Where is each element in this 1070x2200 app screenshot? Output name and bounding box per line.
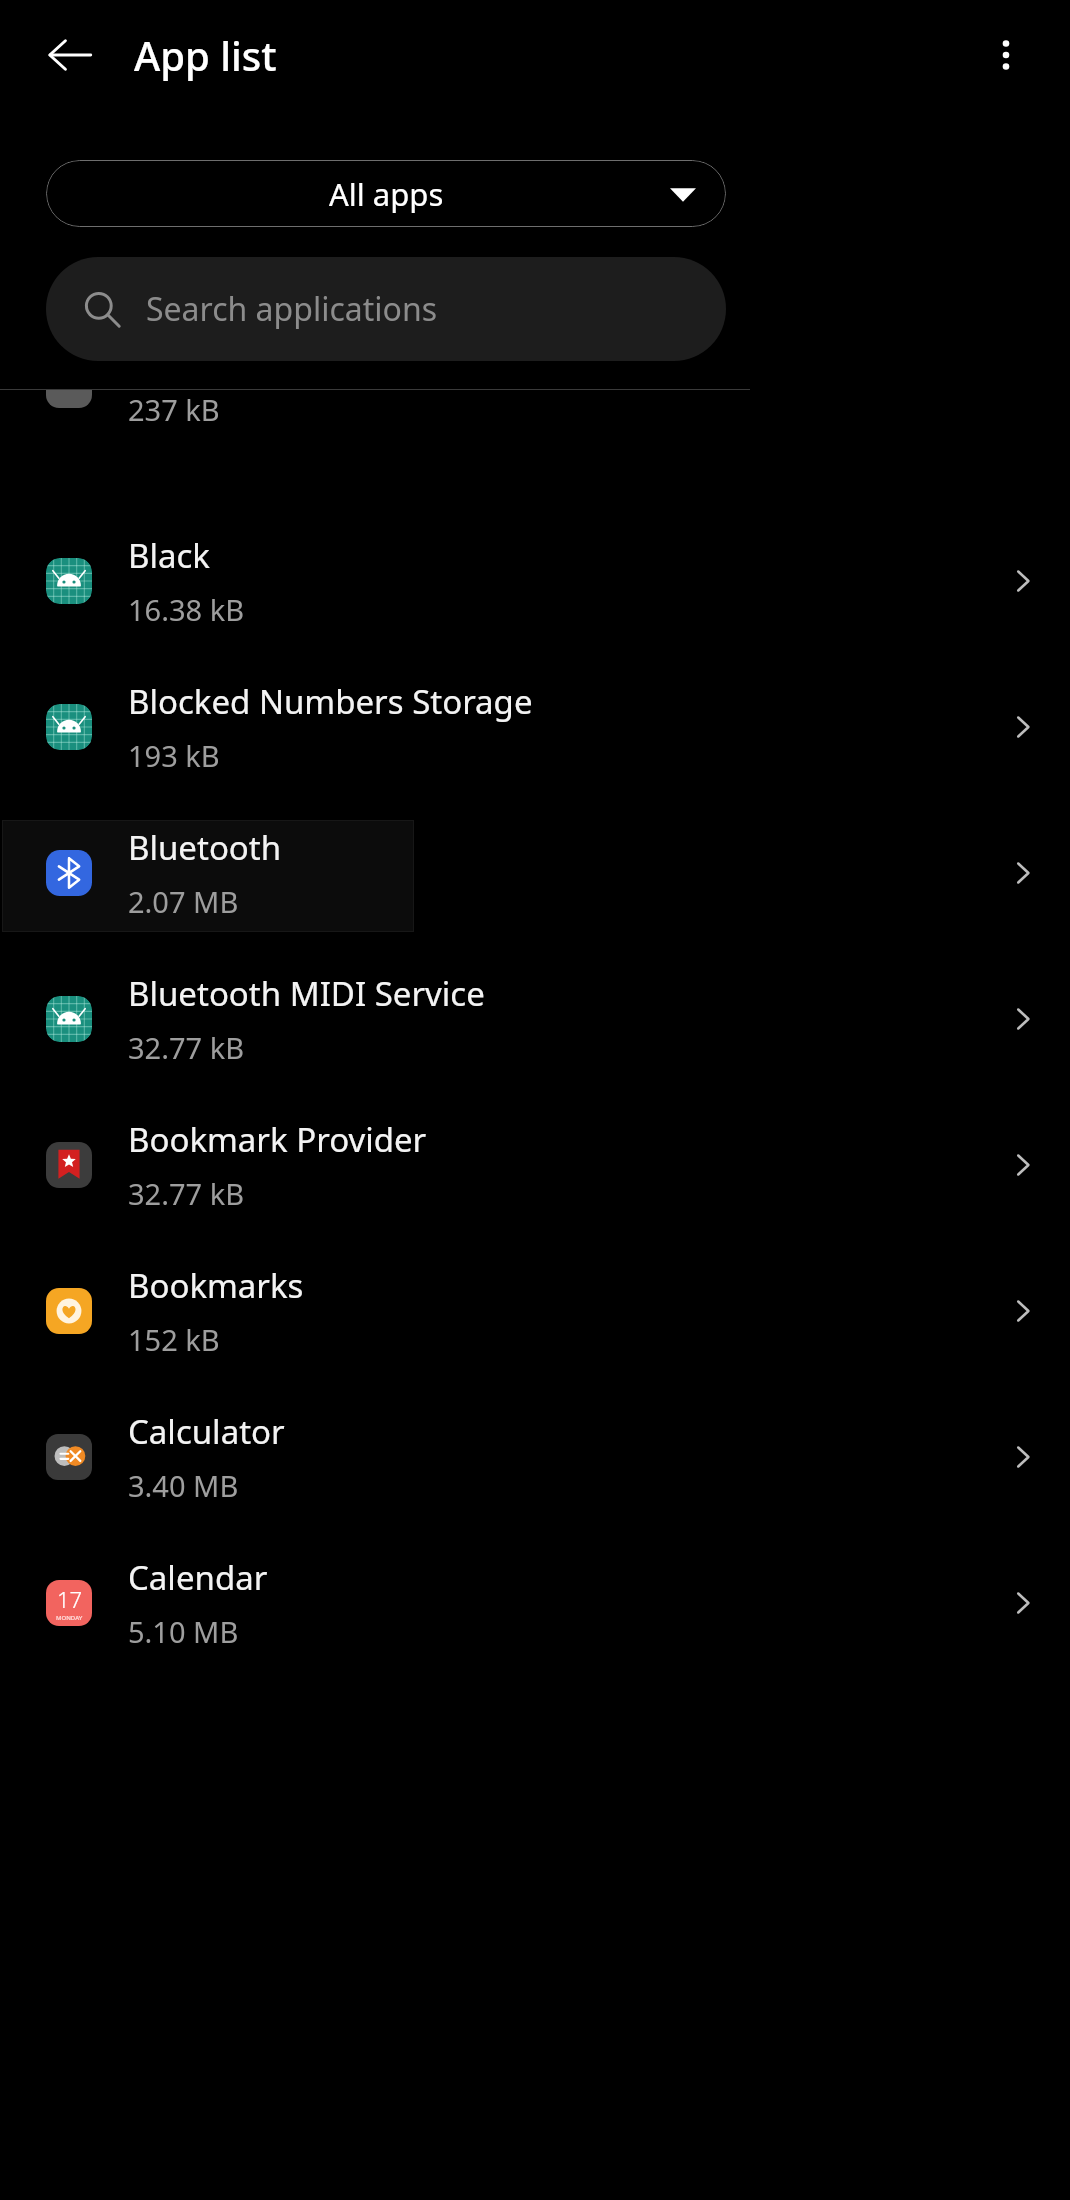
button[interactable]: 17 [0, 1530, 1070, 1676]
button[interactable]: Calculator [0, 1384, 1070, 1530]
staticText: 16.38 kB [128, 590, 245, 629]
button[interactable]: Bluetooth [0, 800, 1070, 946]
button[interactable]: Bluetooth MIDI Service [0, 946, 1070, 1092]
staticText: 17 [57, 1584, 83, 1614]
staticText: 237 kB [128, 390, 220, 429]
button[interactable]: Bookmarks [0, 1238, 1070, 1384]
button[interactable]: Bookmark Provider [0, 1092, 1070, 1238]
staticText: 193 kB [128, 736, 220, 775]
staticText: All apps [329, 173, 444, 215]
button[interactable]: Back [34, 19, 106, 91]
button[interactable]: All apps [46, 160, 726, 227]
button[interactable]: Search applications [46, 257, 726, 361]
staticText: Bookmarks [128, 1263, 304, 1308]
staticText: Black [128, 533, 210, 578]
staticText: MONDAY [56, 1614, 83, 1622]
staticText: Bluetooth MIDI Service [128, 971, 485, 1016]
staticText: 32.77 kB [128, 1028, 245, 1067]
staticText: Calculator [128, 1409, 285, 1454]
staticText: 32.77 kB [128, 1174, 245, 1213]
staticText: App list [134, 28, 277, 82]
staticText: 5.10 MB [128, 1612, 239, 1651]
button[interactable]: Blocked Numbers Storage [0, 654, 1070, 800]
staticText: Bluetooth [128, 825, 282, 870]
staticText: 152 kB [128, 1320, 220, 1359]
staticText: Search applications [146, 287, 438, 331]
button[interactable]: More options [970, 19, 1042, 91]
staticText: 3.40 MB [128, 1466, 239, 1505]
staticText: Calendar [128, 1555, 268, 1600]
button[interactable]: Black [0, 508, 1070, 654]
staticText: Blocked Numbers Storage [128, 679, 533, 724]
staticText: Bookmark Provider [128, 1117, 427, 1162]
staticText: 2.07 MB [128, 882, 239, 921]
